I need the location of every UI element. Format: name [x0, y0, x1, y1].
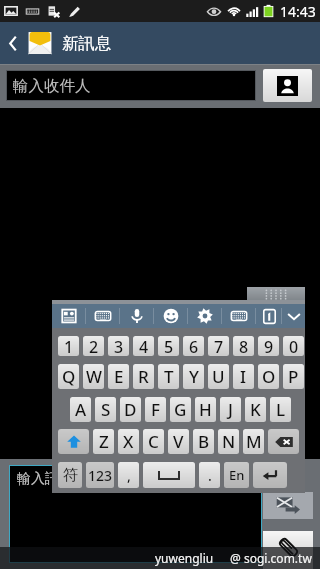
button[interactable]: C — [143, 429, 164, 454]
staticText: F — [151, 398, 160, 421]
staticText: 0 — [289, 336, 299, 356]
button[interactable]: . — [199, 462, 220, 488]
staticText: C — [148, 430, 159, 453]
button[interactable]: Input language — [256, 304, 282, 328]
button[interactable]: Keyboard layout — [86, 304, 120, 328]
staticText: A — [75, 398, 87, 421]
staticText: I — [240, 365, 247, 388]
button[interactable]: En — [224, 462, 249, 488]
button[interactable]: H — [195, 397, 216, 422]
staticText: En — [229, 466, 245, 484]
button[interactable]: Enter — [253, 462, 287, 488]
button[interactable]: L — [270, 397, 291, 422]
staticText: @ sogi.com.tw — [230, 550, 312, 566]
button[interactable]: M — [243, 429, 264, 454]
button[interactable]: 5 — [158, 336, 179, 356]
button[interactable]: 0 — [283, 336, 304, 356]
staticText: , — [127, 466, 131, 485]
button[interactable]: R — [133, 364, 154, 389]
staticText: 新訊息 — [62, 33, 112, 54]
staticText: 輸入收件人 — [13, 76, 91, 96]
button[interactable]: T — [158, 364, 179, 389]
button[interactable]: B — [193, 429, 214, 454]
staticText: Q — [62, 365, 76, 388]
button[interactable]: Z — [93, 429, 114, 454]
button[interactable]: K — [245, 397, 266, 422]
staticText: Y — [189, 365, 199, 388]
button[interactable]: Move keyboard — [247, 287, 305, 301]
button[interactable]: 輸入訊息 — [10, 466, 261, 562]
button[interactable]: 2 — [83, 336, 104, 356]
staticText: 3 — [114, 336, 124, 356]
button[interactable]: Pick contact — [263, 69, 312, 102]
button[interactable] — [143, 462, 195, 488]
staticText: X — [123, 430, 134, 453]
staticText: G — [174, 398, 187, 421]
button[interactable]: G — [170, 397, 191, 422]
button[interactable]: Navigate up — [0, 22, 26, 64]
staticText: B — [198, 430, 210, 453]
staticText: 9 — [264, 336, 274, 356]
staticText: P — [288, 365, 299, 388]
button[interactable]: 7 — [208, 336, 229, 356]
button[interactable]: J — [220, 397, 241, 422]
button[interactable]: 輸入收件人 — [7, 71, 255, 100]
staticText: S — [101, 398, 111, 421]
button[interactable]: 4 — [133, 336, 154, 356]
staticText: Z — [99, 430, 109, 453]
button[interactable]: W — [83, 364, 104, 389]
staticText: 7 — [214, 336, 224, 356]
button[interactable]: 123 — [86, 462, 114, 488]
button[interactable]: S — [95, 397, 116, 422]
staticText: R — [138, 365, 149, 388]
button[interactable]: E — [108, 364, 129, 389]
button[interactable]: Q — [58, 364, 79, 389]
button[interactable]: A — [70, 397, 91, 422]
button[interactable]: O — [258, 364, 279, 389]
button[interactable]: X — [118, 429, 139, 454]
button[interactable]: 1 — [58, 336, 79, 356]
staticText: N — [222, 430, 236, 453]
button[interactable]: , — [118, 462, 139, 488]
button[interactable]: U — [208, 364, 229, 389]
button[interactable]: I — [233, 364, 254, 389]
button[interactable]: 3 — [108, 336, 129, 356]
staticText: K — [250, 398, 261, 421]
staticText: 2 — [89, 336, 99, 356]
button[interactable]: Text input mode — [52, 304, 86, 328]
button[interactable]: 8 — [233, 336, 254, 356]
button[interactable]: N — [218, 429, 239, 454]
button[interactable]: Hide keyboard — [282, 304, 305, 328]
staticText: L — [276, 398, 286, 421]
button[interactable]: P — [283, 364, 304, 389]
button[interactable]: Settings — [188, 304, 222, 328]
staticText: U — [212, 365, 225, 388]
button[interactable]: 9 — [258, 336, 279, 356]
staticText: 6 — [189, 336, 199, 356]
staticText: 5 — [164, 336, 174, 356]
staticText: H — [199, 398, 212, 421]
button[interactable]: Split keyboard — [222, 304, 256, 328]
button[interactable]: Attach file — [263, 531, 313, 569]
button[interactable]: Shift — [58, 429, 89, 454]
staticText: 123 — [88, 466, 113, 485]
staticText: M — [246, 430, 262, 453]
staticText: 1 — [64, 336, 74, 356]
staticText: W — [86, 365, 102, 388]
staticText: 符 — [63, 466, 78, 485]
staticText: D — [124, 398, 137, 421]
staticText: O — [262, 365, 276, 388]
staticText: yuwengliu — [155, 550, 214, 566]
button[interactable]: 符 — [58, 462, 82, 488]
button[interactable]: 6 — [183, 336, 204, 356]
button[interactable]: Emoji — [154, 304, 188, 328]
button[interactable]: V — [168, 429, 189, 454]
button[interactable]: D — [120, 397, 141, 422]
button[interactable]: Y — [183, 364, 204, 389]
button[interactable]: Send message — [263, 492, 313, 519]
button[interactable]: Voice input — [120, 304, 154, 328]
button[interactable]: F — [145, 397, 166, 422]
staticText: V — [173, 430, 184, 453]
button[interactable]: Backspace — [268, 429, 299, 454]
staticText: 14:43 — [280, 2, 316, 21]
